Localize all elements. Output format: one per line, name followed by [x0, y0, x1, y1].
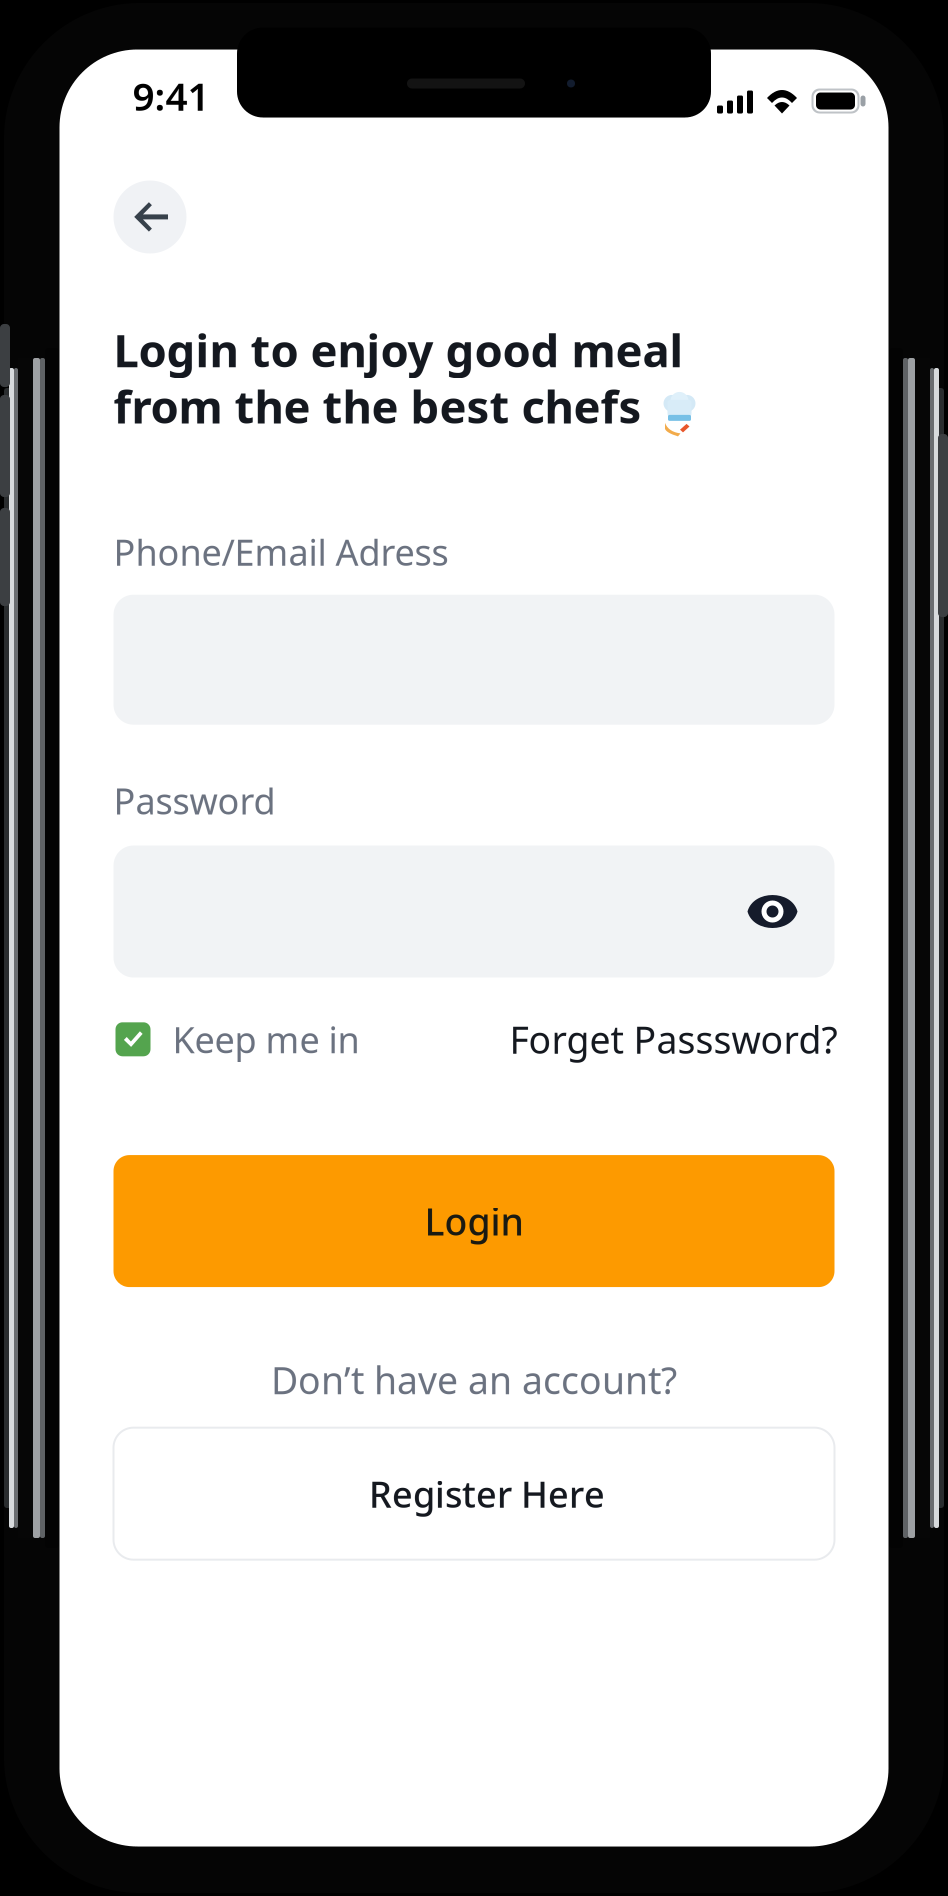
button[interactable]: Keep me in: [115, 1015, 359, 1063]
staticText: Phone/Email Adress: [113, 528, 448, 576]
staticText: Forget Passsword?: [509, 1014, 837, 1064]
staticText: Password: [113, 777, 275, 824]
staticText: Login to enjoy good meal: [113, 319, 683, 380]
staticText: Don’t have an account?: [271, 1355, 677, 1405]
staticText: Keep me in: [172, 1015, 359, 1063]
staticText: Login: [424, 1196, 523, 1246]
staticText: 9:41: [132, 70, 209, 121]
button[interactable]: Back: [113, 180, 186, 253]
button[interactable]: Forget Passsword?: [509, 1014, 837, 1064]
button[interactable]: Show password: [732, 877, 812, 945]
staticText: Register Here: [369, 1470, 605, 1518]
staticText: from the the best chefs: [113, 376, 641, 436]
button[interactable]: Login: [113, 1155, 834, 1287]
button[interactable]: Register Here: [113, 1428, 834, 1560]
